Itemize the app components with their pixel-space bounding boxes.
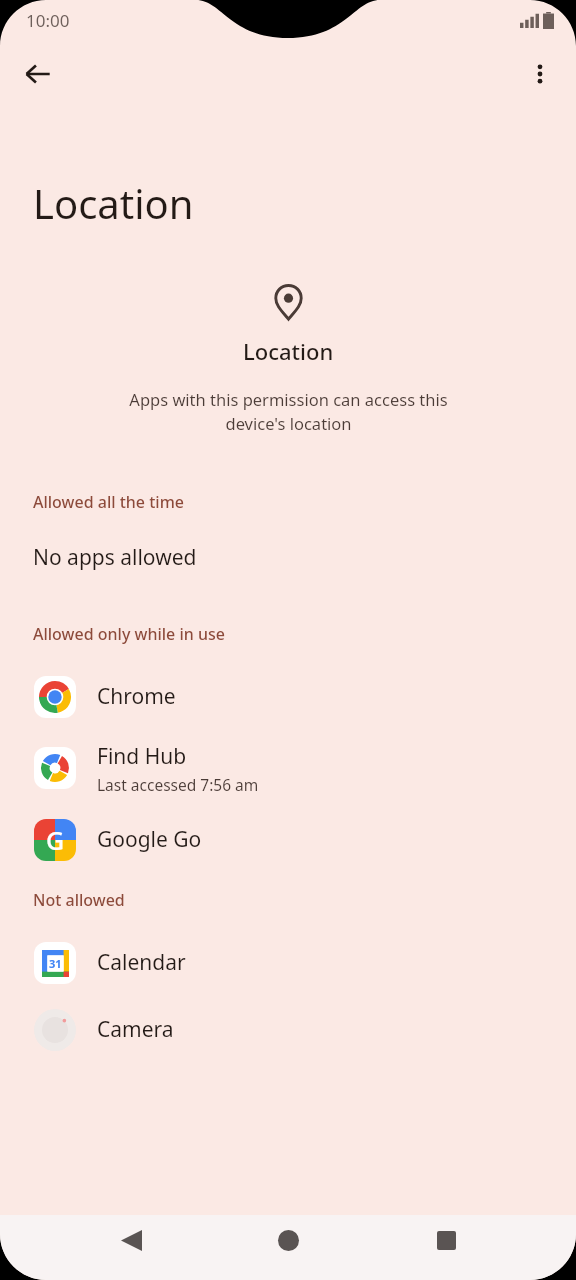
staticText: 10:00: [26, 9, 70, 32]
staticText: 31: [49, 956, 62, 971]
staticText: G: [46, 823, 65, 857]
staticText: Chrome: [97, 682, 176, 711]
staticText: Calendar: [97, 948, 186, 977]
staticText: Location: [33, 176, 194, 230]
button[interactable]: Find Hub: [0, 730, 576, 806]
staticText: Google Go: [97, 825, 202, 854]
button[interactable]: G: [0, 806, 576, 873]
staticText: Not allowed: [33, 889, 125, 911]
staticText: Location: [243, 336, 334, 366]
staticText: Camera: [97, 1015, 174, 1044]
button[interactable]: Back: [104, 1215, 158, 1266]
staticText: Allowed only while in use: [33, 623, 225, 645]
button[interactable]: Home: [261, 1215, 315, 1266]
button[interactable]: Camera: [0, 996, 576, 1063]
button[interactable]: Back: [14, 50, 62, 98]
staticText: Last accessed 7:56 am: [97, 774, 259, 795]
button[interactable]: No apps allowed: [0, 537, 576, 577]
button[interactable]: 31: [0, 929, 576, 996]
staticText: Allowed all the time: [33, 491, 184, 513]
staticText: No apps allowed: [33, 543, 197, 572]
staticText: Find Hub: [97, 742, 187, 771]
button[interactable]: More options: [516, 50, 564, 98]
button[interactable]: Chrome: [0, 663, 576, 730]
button[interactable]: Recents: [419, 1215, 473, 1266]
staticText: Apps with this permission can access thi…: [129, 388, 448, 435]
